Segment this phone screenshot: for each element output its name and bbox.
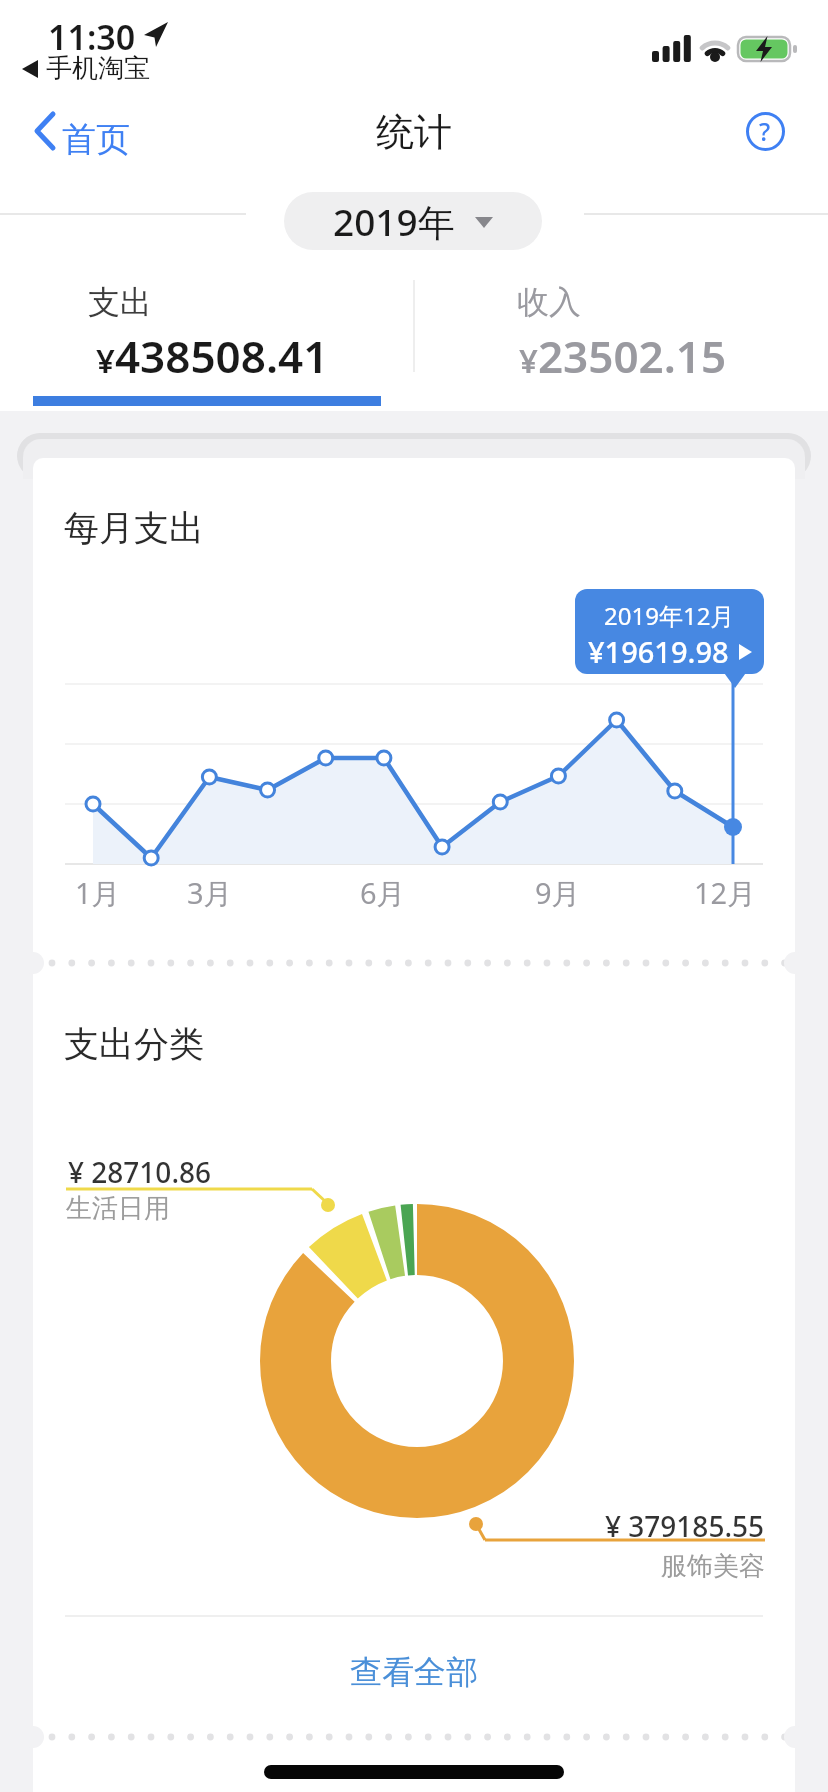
staticText: ? bbox=[759, 114, 771, 148]
staticText: ¥ 379185.55 bbox=[605, 1507, 765, 1545]
staticText: 1月 bbox=[75, 873, 121, 909]
staticText: 首页 bbox=[62, 118, 130, 161]
staticText: 9月 bbox=[535, 873, 581, 909]
button[interactable]: 2019年12月 bbox=[575, 589, 764, 674]
button[interactable]: 首页 bbox=[28, 105, 158, 157]
staticText: 12月 bbox=[694, 873, 757, 909]
button[interactable] bbox=[33, 272, 413, 412]
staticText: 服饰美容 bbox=[661, 1550, 765, 1583]
staticText: ¥19619.98 bbox=[588, 632, 729, 671]
staticText: ¥23502.15 bbox=[519, 326, 727, 386]
staticText: 生活日用 bbox=[66, 1192, 170, 1225]
staticText: 2019年 bbox=[333, 196, 455, 247]
staticText: 2019年12月 bbox=[604, 599, 735, 632]
button[interactable] bbox=[415, 272, 795, 412]
staticText: 收入 bbox=[517, 282, 581, 322]
staticText: 支出 bbox=[88, 282, 152, 322]
staticText: 11:30 bbox=[48, 14, 136, 60]
staticText: ¥438508.41 bbox=[96, 326, 329, 386]
staticText: 6月 bbox=[360, 873, 406, 909]
button[interactable]: 2019年 bbox=[284, 192, 542, 250]
button[interactable]: ? bbox=[745, 111, 785, 151]
staticText: 支出分类 bbox=[64, 1022, 204, 1066]
staticText: 手机淘宝 bbox=[46, 52, 150, 85]
staticText: 统计 bbox=[376, 108, 452, 156]
button[interactable]: 查看全部 bbox=[314, 1644, 514, 1700]
staticText: 每月支出 bbox=[64, 506, 204, 550]
staticText: 3月 bbox=[187, 873, 233, 909]
staticText: ¥ 28710.86 bbox=[68, 1153, 212, 1191]
staticText: 查看全部 bbox=[350, 1652, 478, 1692]
